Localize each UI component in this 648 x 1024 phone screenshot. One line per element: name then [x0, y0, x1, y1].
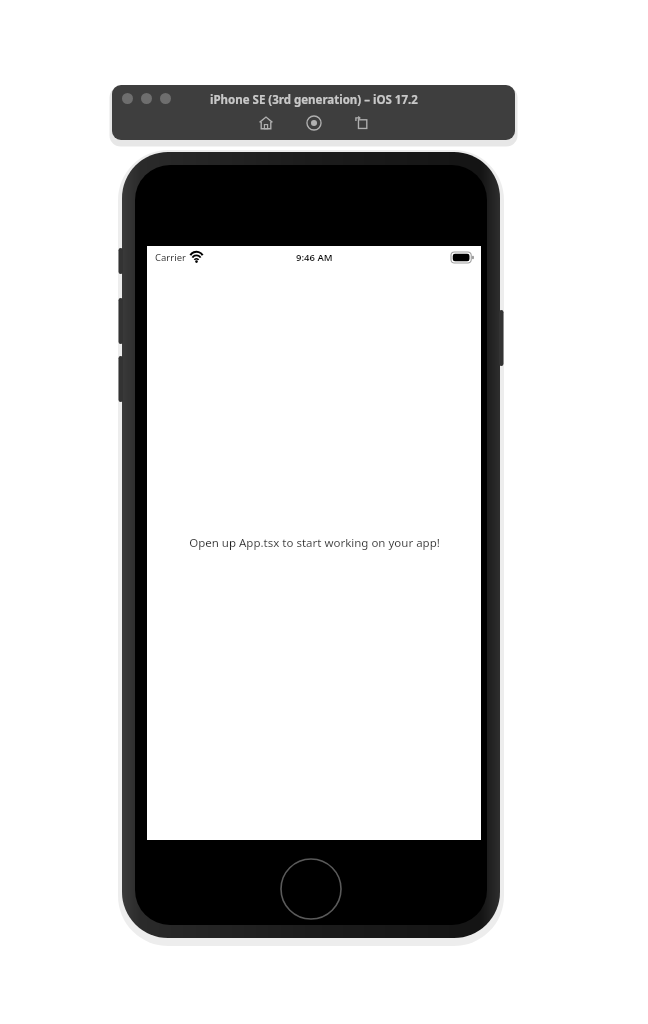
button[interactable]: Minimize: [141, 93, 152, 104]
other: Wi-Fi: [190, 253, 203, 263]
staticText: iPhone SE (3rd generation) – iOS 17.2: [210, 92, 418, 108]
staticText: Carrier: [155, 251, 186, 264]
button[interactable]: Record: [304, 113, 324, 133]
button[interactable]: Zoom: [160, 93, 171, 104]
button[interactable]: Screenshot: [352, 113, 372, 133]
staticText: Open up App.tsx to start working on your…: [189, 535, 440, 551]
staticText: 9:46 AM: [296, 251, 333, 264]
button[interactable]: Home: [256, 113, 276, 133]
button[interactable]: Close: [122, 93, 133, 104]
other: Battery full: [451, 252, 474, 263]
